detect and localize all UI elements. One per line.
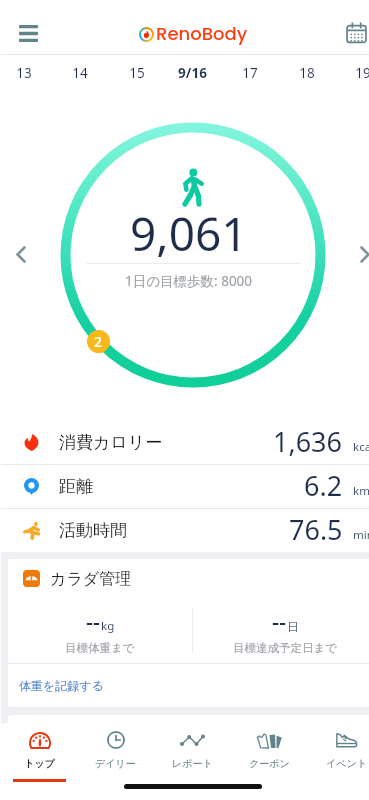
button[interactable]: 距離 [1, 465, 369, 508]
staticText: 1,636 [273, 423, 343, 460]
button[interactable]: 体重を記録する [8, 664, 369, 707]
button[interactable]: 19 [334, 55, 369, 91]
button[interactable]: 活動時間 [1, 509, 369, 552]
staticText: 目標達成予定日まで [233, 641, 338, 655]
staticText: -- [86, 606, 101, 636]
staticText: 19 [355, 64, 369, 82]
button[interactable]: レポート [154, 723, 231, 778]
button[interactable]: Calendar [336, 13, 369, 53]
button[interactable]: 9/16 [164, 55, 221, 91]
staticText: 76.5 [289, 511, 343, 548]
staticText: 1日の目標歩数: 8000 [125, 272, 253, 290]
button[interactable]: クーポン [231, 723, 308, 778]
button[interactable]: 消費カロリー [1, 421, 369, 464]
staticText: km [353, 483, 369, 499]
button[interactable]: 18 [278, 55, 335, 91]
staticText: -- [272, 606, 287, 636]
staticText: RenoBody [156, 21, 248, 46]
staticText: カラダ管理 [50, 569, 132, 589]
staticText: トップ [24, 757, 55, 770]
button[interactable]: Menu [8, 13, 48, 53]
staticText: レポート [172, 757, 213, 770]
staticText: 日 [287, 620, 299, 634]
button[interactable]: 13 [0, 55, 52, 91]
staticText: kg [101, 618, 115, 634]
staticText: 17 [242, 64, 258, 82]
button[interactable]: 15 [108, 55, 165, 91]
staticText: 13 [16, 64, 32, 82]
staticText: 14 [72, 64, 88, 82]
staticText: 2 [94, 332, 103, 351]
button[interactable]: Previous day [6, 239, 36, 269]
staticText: min [353, 527, 369, 543]
button[interactable]: Next day [350, 239, 369, 269]
button[interactable]: イベント [308, 723, 369, 778]
staticText: 距離 [59, 476, 93, 497]
staticText: 9/16 [178, 64, 207, 82]
button[interactable]: 14 [51, 55, 108, 91]
staticText: 18 [299, 64, 315, 82]
staticText: kcal [353, 439, 369, 455]
staticText: 消費カロリー [59, 432, 163, 453]
staticText: 目標体重まで [65, 641, 135, 655]
staticText: 6.2 [304, 467, 343, 504]
staticText: 活動時間 [59, 520, 127, 541]
staticText: 9,061 [130, 202, 248, 265]
button[interactable]: トップ [1, 723, 77, 778]
button[interactable]: デイリー [77, 723, 154, 778]
staticText: デイリー [95, 757, 136, 770]
staticText: 15 [129, 64, 145, 82]
staticText: イベント [326, 757, 367, 770]
staticText: 体重を記録する [19, 678, 104, 693]
staticText: クーポン [249, 757, 290, 770]
button[interactable]: 17 [221, 55, 278, 91]
